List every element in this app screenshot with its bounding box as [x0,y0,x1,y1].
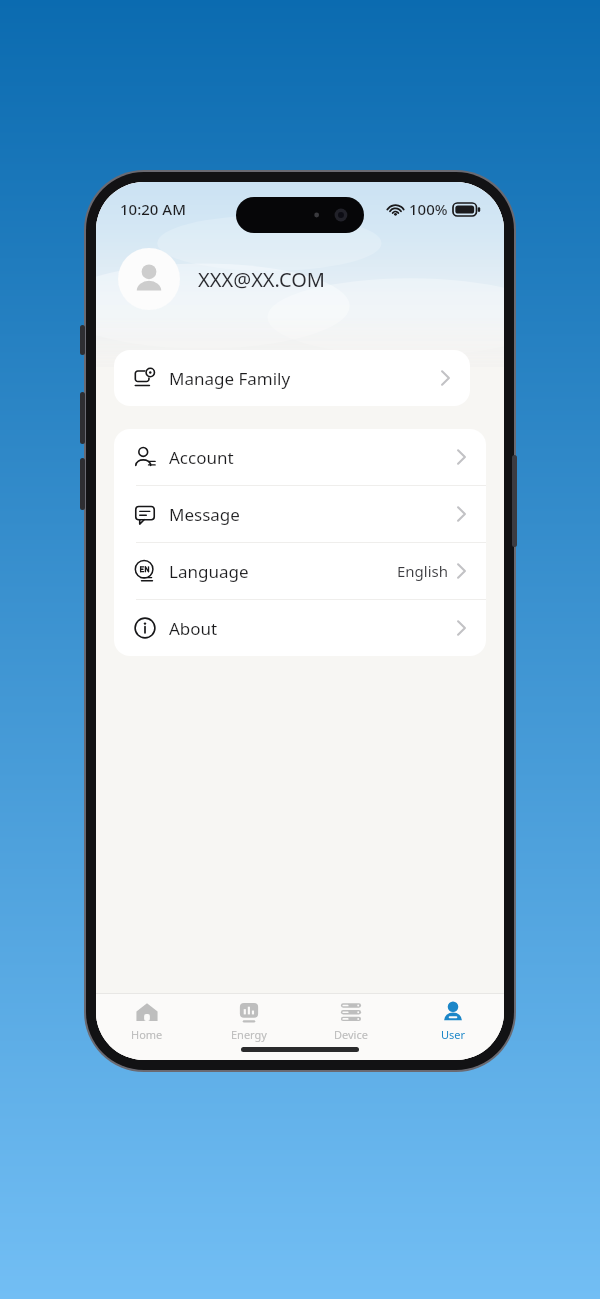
staticText: 100% [409,199,448,219]
button[interactable]: Device [300,1000,402,1042]
staticText: Account [169,446,234,469]
staticText: Home [131,1027,163,1042]
staticText: XXX@XX.COM [198,266,325,293]
button[interactable]: User [402,1000,504,1042]
button[interactable]: About [114,600,486,656]
staticText: About [169,617,218,640]
staticText: Manage Family [169,367,291,390]
button[interactable]: Energy [198,1000,300,1042]
staticText: Energy [231,1027,267,1042]
button[interactable]: Language [114,543,486,599]
staticText: English [397,561,449,581]
staticText: Device [334,1027,368,1042]
button[interactable]: Home [96,1000,198,1042]
staticText: Message [169,503,240,526]
staticText: 10:20 AM [120,199,186,219]
button[interactable]: Message [114,486,486,542]
button[interactable]: Account [114,429,486,485]
staticText: User [441,1027,466,1042]
button[interactable]: Manage Family [114,350,470,406]
staticText: Language [169,560,249,583]
